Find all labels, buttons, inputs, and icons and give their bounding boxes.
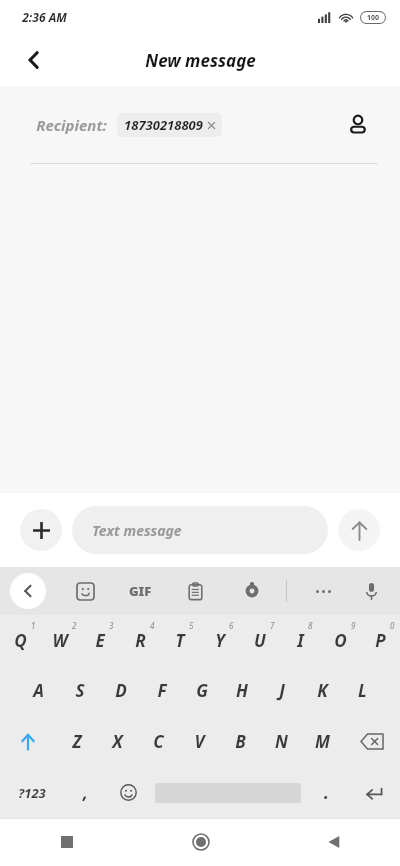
button[interactable]: V (179, 716, 220, 767)
button[interactable]: Add attachment (20, 509, 62, 551)
staticText: U (254, 629, 266, 652)
staticText: V (194, 730, 205, 753)
button[interactable]: Choose contact (338, 105, 378, 145)
staticText: 100 (367, 13, 380, 23)
button[interactable]: Close toolbar (10, 573, 46, 609)
button[interactable]: Text message (72, 506, 328, 554)
button[interactable]: X (97, 716, 138, 767)
staticText: W (52, 629, 68, 652)
staticText: F (157, 679, 167, 702)
staticText: . (324, 781, 329, 804)
button[interactable]: W (40, 615, 80, 665)
staticText: 7 (270, 620, 275, 631)
staticText: 18730218809 (124, 116, 203, 134)
staticText: L (358, 679, 367, 702)
staticText: 6 (229, 620, 234, 631)
staticText: K (317, 679, 328, 702)
staticText: 8 (308, 620, 313, 631)
staticText: 2:36 AM (22, 9, 67, 25)
button[interactable]: Z (56, 716, 97, 767)
staticText: A (33, 679, 44, 702)
button[interactable]: A (18, 665, 59, 716)
button[interactable]: ?123 (0, 767, 64, 818)
button[interactable]: M (302, 716, 343, 767)
staticText: Z (72, 730, 82, 753)
button[interactable]: G (182, 665, 222, 716)
staticText: New message (145, 49, 256, 72)
button[interactable]: U (240, 615, 280, 665)
staticText: C (153, 730, 164, 753)
button[interactable]: Send (338, 509, 380, 551)
staticText: 1 (31, 620, 36, 631)
button[interactable]: R (120, 615, 160, 665)
button[interactable]: Enter (348, 767, 400, 818)
staticText: I (297, 629, 304, 652)
button[interactable]: More options (306, 574, 340, 608)
staticText: G (196, 679, 208, 702)
staticText: 4 (150, 620, 155, 631)
staticText: H (236, 679, 248, 702)
staticText: 2 (72, 620, 77, 631)
button[interactable]: P (360, 615, 400, 665)
button[interactable]: F (141, 665, 182, 716)
button[interactable]: Emoji (107, 767, 150, 818)
staticText: N (275, 730, 288, 753)
staticText: P (375, 629, 386, 652)
staticText: 3 (109, 620, 114, 631)
button[interactable]: J (262, 665, 302, 716)
button[interactable]: E (80, 615, 120, 665)
staticText: T (175, 629, 185, 652)
staticText: B (235, 730, 246, 753)
button[interactable]: T (160, 615, 200, 665)
button[interactable]: O (320, 615, 360, 665)
button[interactable]: S (59, 665, 100, 716)
staticText: GIF (129, 582, 152, 600)
button[interactable]: Settings (235, 574, 269, 608)
button[interactable]: N (261, 716, 302, 767)
button[interactable]: Back (267, 818, 400, 866)
button[interactable]: , (64, 767, 107, 818)
button[interactable]: Backspace (343, 716, 400, 767)
staticText: E (95, 629, 105, 652)
button[interactable]: Voice input (354, 574, 388, 608)
staticText: ?123 (18, 784, 46, 802)
button[interactable]: 18730218809 (117, 113, 222, 137)
staticText: 5 (189, 620, 194, 631)
button[interactable]: Y (200, 615, 240, 665)
staticText: J (279, 679, 285, 702)
button[interactable]: H (222, 665, 262, 716)
button[interactable]: Stickers (68, 574, 102, 608)
staticText: Recipient: (36, 115, 107, 135)
staticText: X (112, 730, 123, 753)
staticText: S (75, 679, 85, 702)
staticText: D (115, 679, 127, 702)
staticText: Q (14, 629, 27, 652)
button[interactable]: Space (150, 767, 305, 818)
button[interactable]: C (138, 716, 179, 767)
button[interactable]: B (220, 716, 261, 767)
staticText: O (334, 629, 347, 652)
staticText: , (83, 781, 88, 804)
button[interactable]: Shift (0, 716, 56, 767)
button[interactable]: I (280, 615, 320, 665)
staticText: M (315, 730, 330, 753)
button[interactable]: Q (0, 615, 40, 665)
staticText: Y (215, 629, 225, 652)
staticText: R (135, 629, 146, 652)
button[interactable]: Back (14, 40, 54, 80)
button[interactable]: L (342, 665, 382, 716)
button[interactable]: Home (134, 818, 267, 866)
staticText: Text message (92, 521, 182, 540)
button[interactable]: . (305, 767, 348, 818)
button[interactable]: GIF (120, 571, 160, 611)
staticText: 0 (390, 620, 395, 631)
button[interactable]: K (302, 665, 342, 716)
button[interactable]: D (100, 665, 141, 716)
button[interactable]: Clipboard (178, 574, 212, 608)
staticText: 9 (351, 620, 356, 631)
button[interactable]: Recent apps (0, 818, 134, 866)
